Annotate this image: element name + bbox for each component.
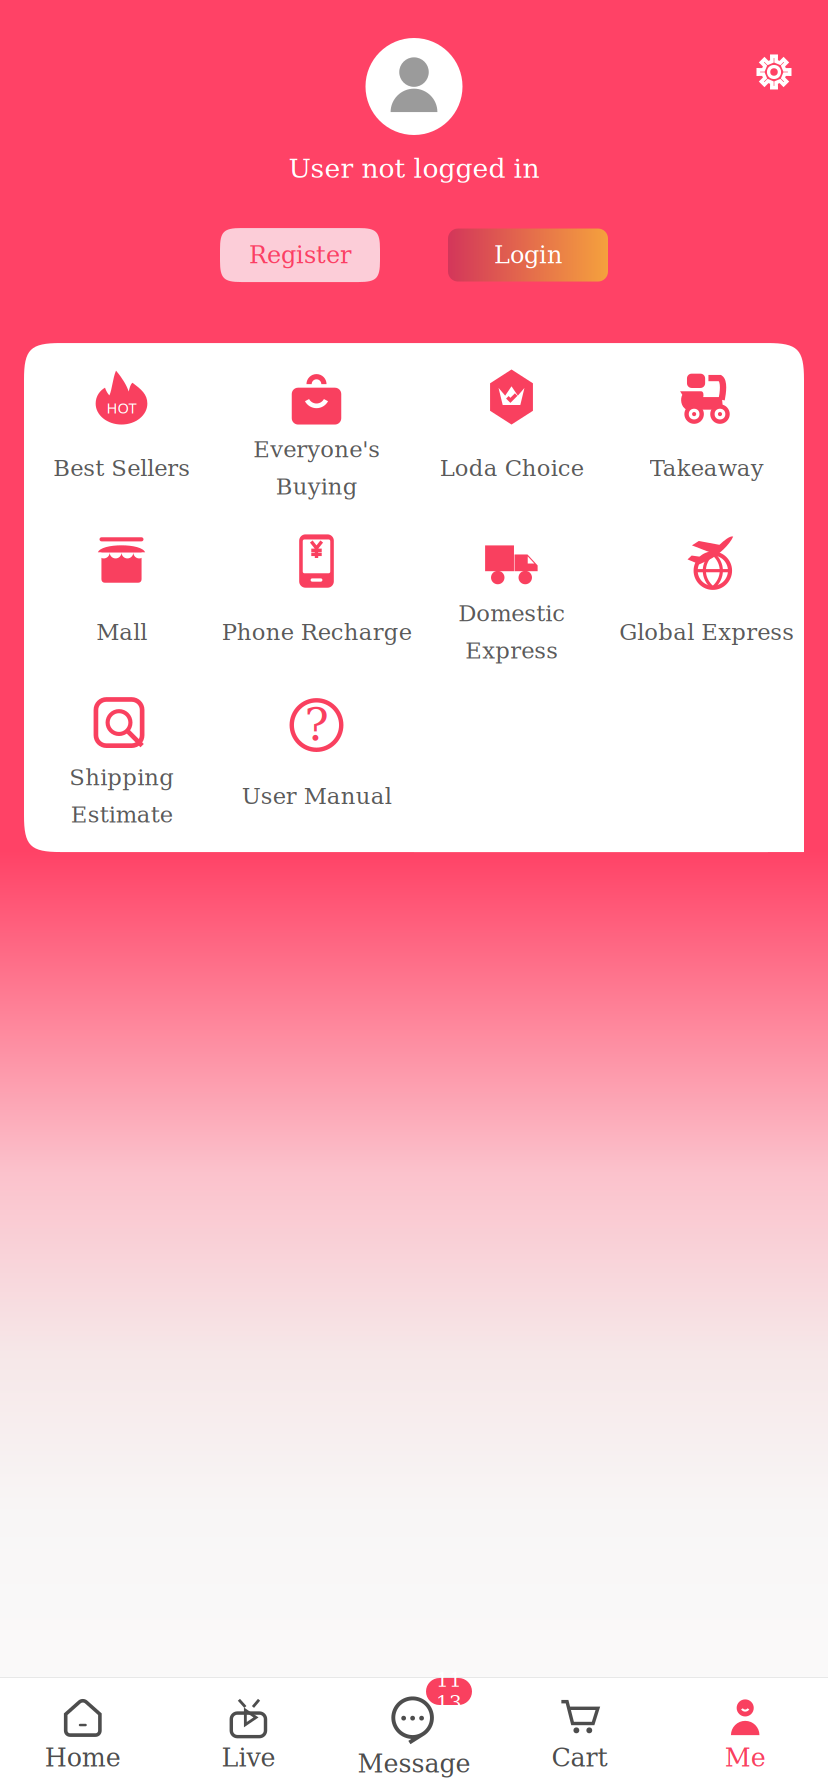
staticText: Everyone's Buying xyxy=(253,436,380,500)
button[interactable]: Loda Choice xyxy=(414,366,609,530)
staticText: Best Sellers xyxy=(53,455,190,481)
button[interactable]: Phone Recharge xyxy=(219,530,414,694)
staticText: User not logged in xyxy=(288,153,539,184)
staticText: Message xyxy=(357,1749,470,1778)
button[interactable]: Me xyxy=(662,1678,828,1792)
button[interactable]: 1113 xyxy=(331,1678,497,1792)
staticText: ? xyxy=(304,698,328,751)
button[interactable]: Takeaway xyxy=(609,366,804,530)
staticText: Mall xyxy=(96,619,147,645)
button[interactable]: Home xyxy=(0,1678,166,1792)
staticText: Live xyxy=(221,1743,275,1772)
staticText: HOT xyxy=(106,398,136,417)
staticText: Register xyxy=(249,241,351,269)
button[interactable]: Everyone's Buying xyxy=(219,366,414,530)
staticText: User Manual xyxy=(241,783,391,809)
staticText: Me xyxy=(725,1743,766,1772)
staticText: Shipping Estimate xyxy=(69,764,174,828)
staticText: Phone Recharge xyxy=(221,619,411,645)
button[interactable]: Settings xyxy=(742,40,806,104)
button[interactable]: Domestic Express xyxy=(414,530,609,694)
staticText: Loda Choice xyxy=(439,455,583,481)
staticText: Domestic Express xyxy=(458,600,565,664)
button[interactable]: Register xyxy=(220,228,380,282)
staticText: Takeaway xyxy=(649,455,763,481)
staticText: 1113 xyxy=(436,1668,462,1715)
staticText: Login xyxy=(494,241,562,269)
staticText: Global Express xyxy=(619,619,794,645)
staticText: Cart xyxy=(552,1743,608,1772)
button[interactable]: Cart xyxy=(497,1678,662,1792)
button[interactable]: Mall xyxy=(24,530,219,694)
button[interactable]: HOT xyxy=(24,366,219,530)
staticText: Home xyxy=(45,1743,121,1772)
button[interactable]: Login xyxy=(448,228,608,281)
button[interactable]: Live xyxy=(166,1678,331,1792)
button[interactable]: ? xyxy=(219,694,414,852)
button[interactable]: Global Express xyxy=(609,530,804,694)
button[interactable]: Shipping Estimate xyxy=(24,694,219,852)
